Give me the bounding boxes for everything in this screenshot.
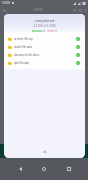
button[interactable]: Home	[39, 164, 49, 174]
staticText: apk file.apk	[14, 61, 76, 65]
button[interactable]: audio file.wav	[4, 43, 85, 51]
button[interactable]: Search	[71, 7, 77, 13]
button[interactable]: ok	[39, 149, 51, 155]
button[interactable]: Select all	[77, 7, 83, 13]
staticText: audio file.wav	[14, 45, 76, 49]
staticText: document file.docx	[14, 53, 76, 57]
staticText: 10:00	[2, 1, 11, 5]
staticText: success: 4 error: 0	[4, 29, 85, 33]
button[interactable]: Recents	[64, 164, 74, 174]
staticText: 4.4 MB of 4.4 MB	[4, 24, 85, 28]
button[interactable]: More options	[83, 8, 87, 12]
staticText: ok	[43, 150, 47, 154]
button[interactable]: Back	[1, 7, 7, 13]
staticText: archive file.zip	[14, 37, 76, 41]
staticText: completed	[4, 18, 85, 23]
button[interactable]: archive file.zip	[4, 35, 85, 43]
button[interactable]: document file.docx	[4, 51, 85, 59]
button[interactable]: apk file.apk	[4, 59, 85, 67]
button[interactable]: Back	[15, 164, 25, 174]
staticText: MOVE	[34, 8, 44, 12]
